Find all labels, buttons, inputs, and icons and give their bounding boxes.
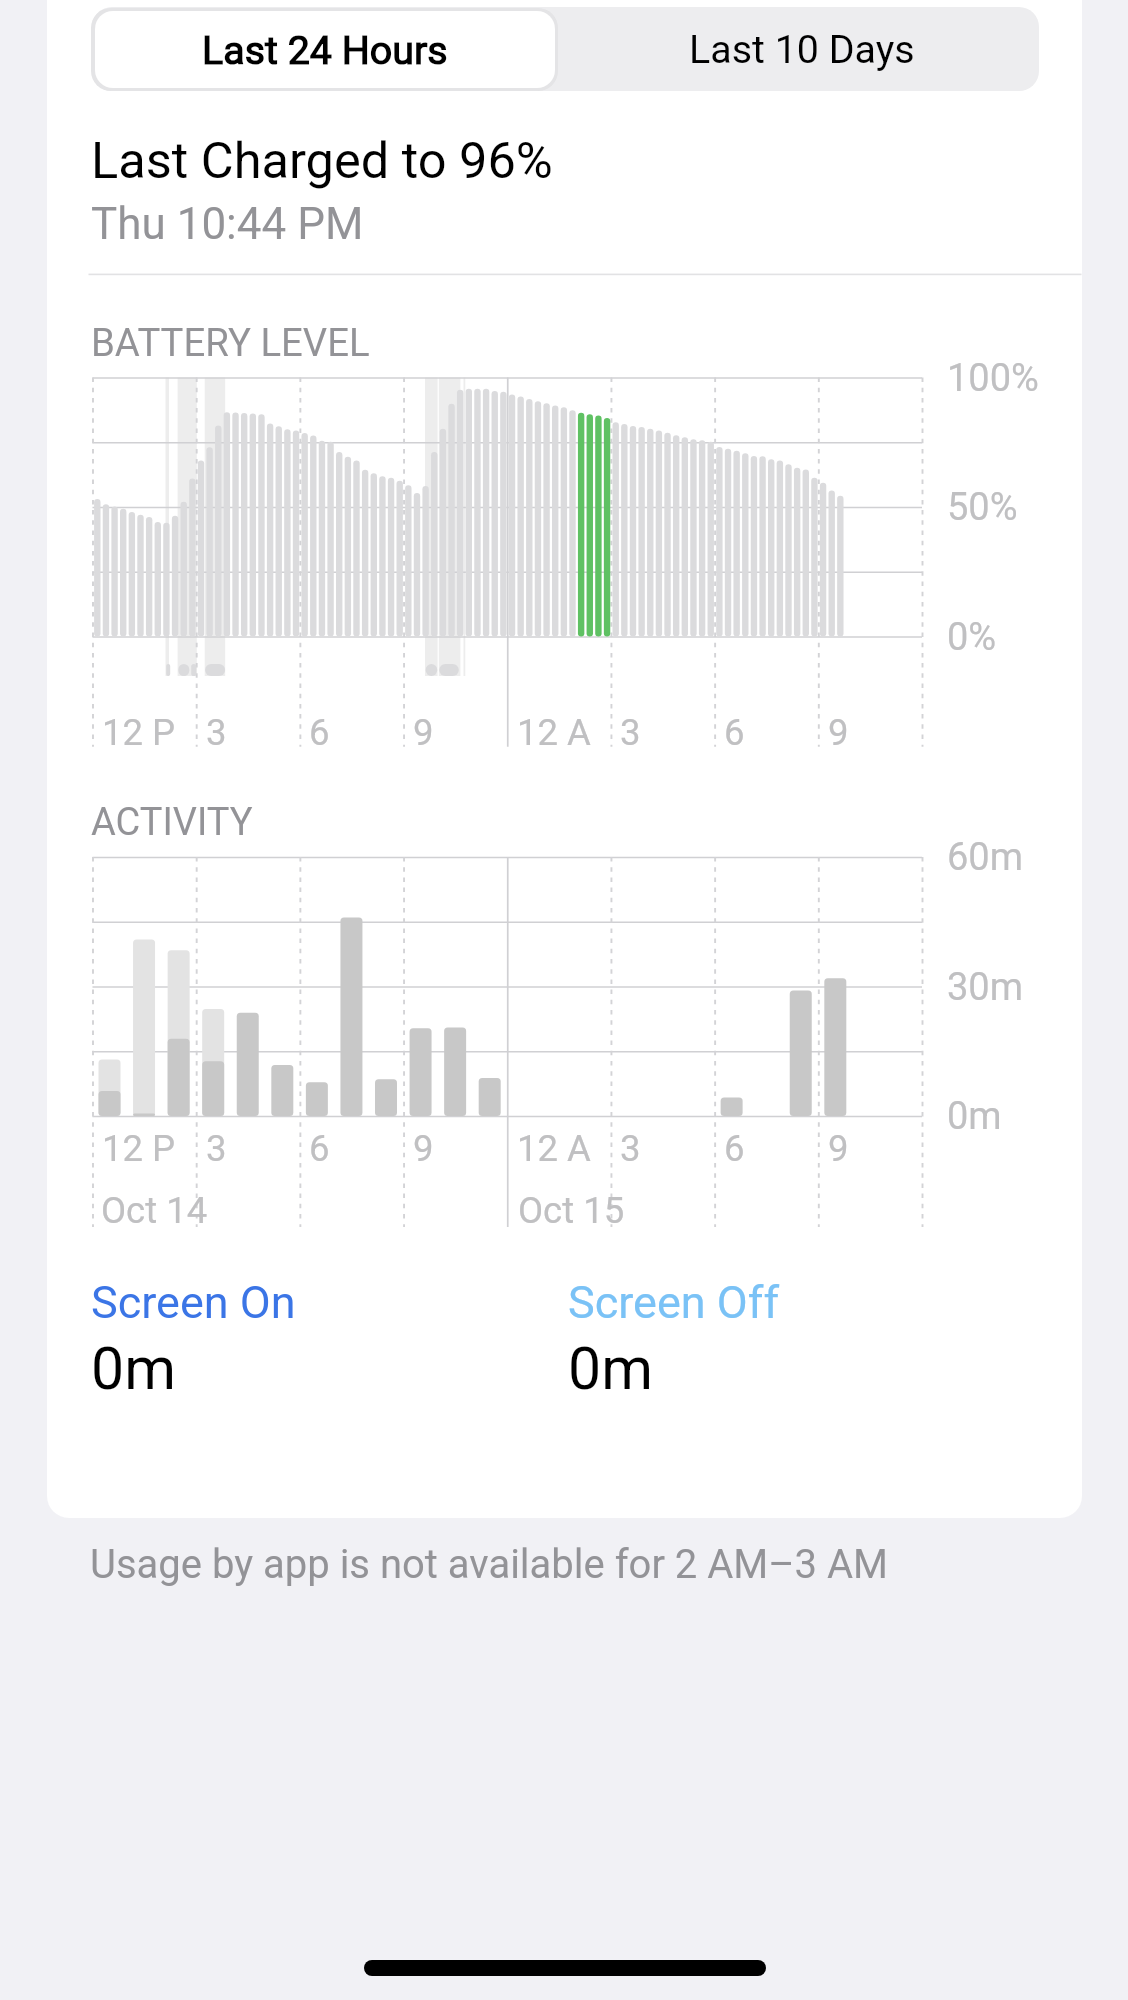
staticText: 6	[724, 711, 745, 754]
staticText: Usage by app is not available for 2 AM–3…	[90, 1541, 888, 1588]
button[interactable]: Last 24 Hours	[95, 11, 555, 88]
button[interactable]: Last 10 Days	[565, 7, 1039, 91]
staticText: Screen On	[91, 1276, 296, 1329]
staticText: 9	[828, 711, 849, 754]
staticText: Screen Off	[568, 1276, 780, 1329]
staticText: 3	[206, 1127, 227, 1170]
staticText: BATTERY LEVEL	[91, 320, 370, 365]
staticText: 0m	[947, 1094, 1002, 1139]
staticText: 6	[724, 1127, 745, 1170]
staticText: 30m	[947, 965, 1024, 1010]
staticText: 12 P	[102, 1127, 176, 1170]
staticText: Last 10 Days	[689, 26, 915, 72]
staticText: 9	[413, 711, 434, 754]
staticText: 12 A	[517, 711, 591, 754]
staticText: 3	[620, 711, 641, 754]
staticText: 3	[620, 1127, 641, 1170]
staticText: 0m	[568, 1334, 653, 1403]
staticText: Oct 15	[518, 1189, 625, 1232]
staticText: Last 24 Hours	[202, 27, 448, 73]
staticText: 60m	[947, 835, 1024, 880]
staticText: 12 A	[517, 1127, 591, 1170]
staticText: 100%	[947, 356, 1039, 401]
staticText: 12 P	[102, 711, 176, 754]
staticText: 50%	[947, 485, 1018, 530]
staticText: 6	[309, 1127, 330, 1170]
staticText: 9	[828, 1127, 849, 1170]
staticText: 0m	[91, 1334, 176, 1403]
staticText: ACTIVITY	[91, 800, 253, 845]
staticText: 6	[309, 711, 330, 754]
button[interactable]	[92, 7, 565, 91]
staticText: Thu 10:44 PM	[91, 198, 364, 250]
staticText: 3	[206, 711, 227, 754]
staticText: Oct 14	[101, 1189, 208, 1232]
staticText: Last Charged to 96%	[91, 131, 553, 190]
staticText: 9	[413, 1127, 434, 1170]
staticText: 0%	[947, 615, 997, 660]
